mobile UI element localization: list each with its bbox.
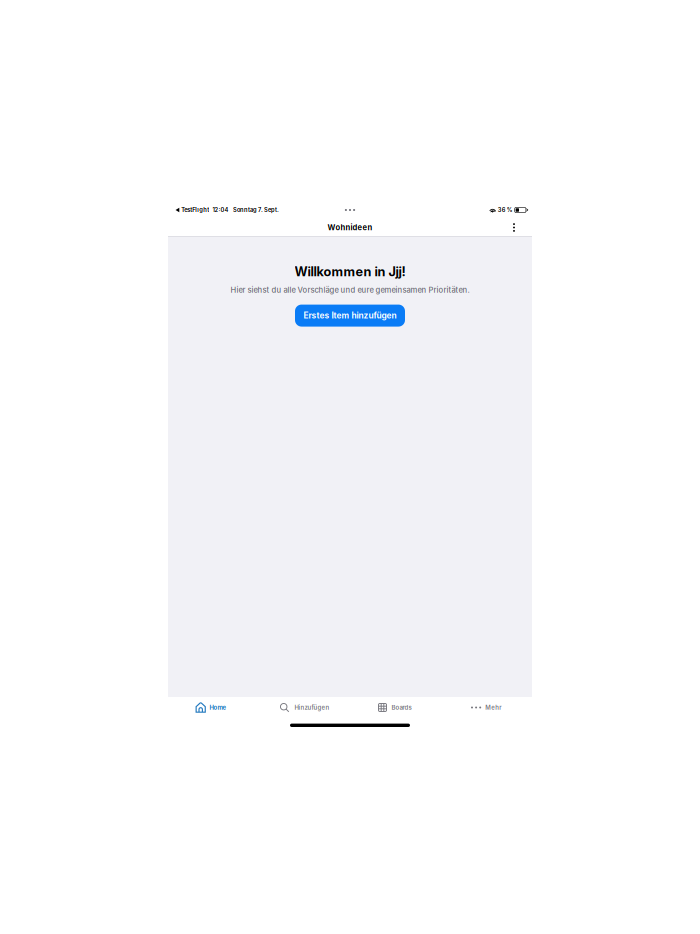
staticText: Boards	[391, 704, 411, 711]
staticText: Hinzufügen	[294, 704, 329, 711]
staticText: Wohnideen	[327, 223, 372, 232]
staticText: Sonntag 7. Sept.	[233, 206, 279, 213]
staticText: TestFlight	[181, 206, 209, 213]
staticText: 12:04	[213, 206, 229, 213]
staticText: Mehr	[485, 704, 501, 711]
button[interactable]: Weitere Optionen	[503, 218, 525, 237]
button[interactable]: Mehr	[441, 697, 532, 717]
button[interactable]: Home	[168, 697, 259, 717]
staticText: Hier siehst du alle Vorschläge und eure …	[230, 285, 469, 295]
staticText: Home	[209, 704, 226, 711]
button[interactable]: Erstes Item hinzufügen	[295, 305, 405, 327]
staticText: Erstes Item hinzufügen	[303, 310, 396, 321]
button[interactable]: Hinzufügen	[259, 697, 350, 717]
staticText: 36 %	[498, 206, 513, 213]
staticText: Willkommen in Jjj!	[294, 264, 405, 279]
button[interactable]: Boards	[350, 697, 441, 717]
